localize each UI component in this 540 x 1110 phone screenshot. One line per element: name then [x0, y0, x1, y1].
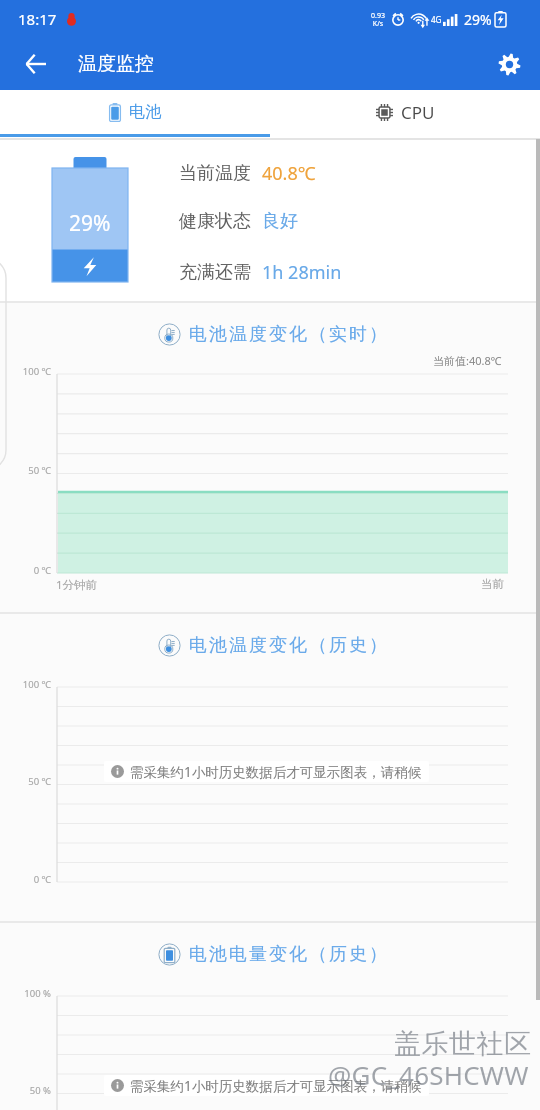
staticText: 电池温度变化（历史）: [188, 634, 388, 657]
staticText: 50 ℃: [0, 464, 51, 477]
staticText: CPU: [401, 101, 435, 124]
staticText: 盖乐世社区: [394, 1027, 532, 1061]
staticText: @GC_46SHCWW: [328, 1057, 529, 1092]
staticText: 29%: [69, 209, 111, 238]
staticText: 健康状态: [179, 210, 251, 233]
staticText: 需采集约1小时历史数据后才可显示图表，请稍候: [130, 1077, 422, 1095]
staticText: 当前: [481, 577, 504, 591]
staticText: 100 ℃: [0, 678, 51, 691]
staticText: 0 ℃: [0, 564, 51, 577]
staticText: 电池: [129, 102, 161, 122]
staticText: 29%: [464, 10, 492, 29]
staticText: 0 ℃: [0, 873, 51, 886]
staticText: 当前值:40.8℃: [433, 353, 502, 368]
staticText: 100 %: [0, 987, 51, 1000]
staticText: 当前温度: [179, 162, 251, 185]
staticText: 4G: [431, 14, 442, 25]
staticText: 18:17: [18, 9, 57, 29]
button[interactable]: Settings: [478, 38, 540, 90]
staticText: 需采集约1小时历史数据后才可显示图表，请稍候: [130, 763, 422, 781]
staticText: 50 %: [0, 1084, 51, 1097]
staticText: 50 ℃: [0, 775, 51, 788]
button[interactable]: CPU: [270, 90, 540, 134]
button[interactable]: Back: [0, 38, 71, 90]
staticText: 1分钟前: [56, 577, 98, 593]
staticText: 电池电量变化（历史）: [188, 943, 388, 966]
staticText: 1h 28min: [262, 260, 342, 285]
staticText: 温度监控: [78, 52, 154, 76]
button[interactable]: 电池: [0, 90, 270, 134]
staticText: 充满还需: [179, 261, 251, 284]
staticText: 40.8℃: [262, 161, 316, 186]
staticText: 良好: [262, 210, 298, 233]
staticText: 100 ℃: [0, 365, 51, 378]
staticText: 电池温度变化（实时）: [188, 323, 388, 346]
staticText: 0.93 K/s: [371, 11, 385, 28]
